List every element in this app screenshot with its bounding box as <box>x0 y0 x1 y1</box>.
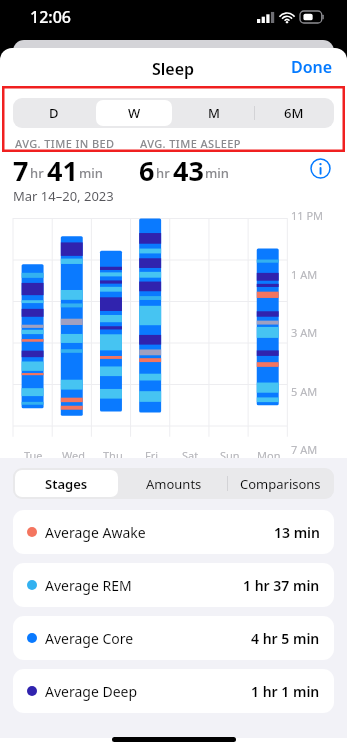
staticText: Amounts <box>146 475 202 493</box>
button[interactable]: D <box>13 98 94 128</box>
staticText: Sun <box>220 448 240 463</box>
staticText: Done <box>291 56 333 78</box>
staticText: 9 AM <box>291 501 318 516</box>
button[interactable]: Stages <box>13 468 120 499</box>
staticText: M <box>208 104 220 122</box>
staticText: 7 <box>13 152 29 184</box>
staticText: W <box>128 104 141 122</box>
staticText: Average Awake <box>45 523 146 542</box>
staticText: D <box>49 104 59 122</box>
button[interactable]: Amounts <box>120 468 227 499</box>
staticText: Fri <box>145 448 159 463</box>
button[interactable]: Comparisons <box>227 468 334 499</box>
staticText: 3 AM <box>291 325 318 340</box>
staticText: Thu <box>103 448 123 463</box>
staticText: hr <box>156 164 170 182</box>
staticText: 6M <box>284 104 304 122</box>
staticText: 11 PM <box>291 208 324 223</box>
staticText: Sleep <box>152 58 195 80</box>
staticText: Average REM <box>45 576 132 595</box>
button[interactable]: Average Core <box>13 616 334 660</box>
staticText: min <box>205 164 229 182</box>
button[interactable]: Done <box>277 50 347 84</box>
button[interactable]: Average Awake <box>13 510 334 554</box>
staticText: 13 min <box>274 523 320 542</box>
staticText: AVG. TIME IN BED <box>15 136 115 151</box>
staticText: Average Core <box>45 629 134 648</box>
staticText: 1 AM <box>291 267 318 282</box>
staticText: 41 <box>47 152 78 184</box>
staticText: 43 <box>173 152 204 184</box>
staticText: 12:06 <box>30 6 71 28</box>
staticText: 4 hr 5 min <box>251 629 320 648</box>
staticText: Sat <box>182 448 199 463</box>
staticText: AVG. TIME ASLEEP <box>140 136 241 151</box>
button[interactable]: 6M <box>254 98 334 128</box>
staticText: 1 hr 37 min <box>243 576 320 595</box>
button[interactable]: Average REM <box>13 563 334 607</box>
staticText: min <box>79 164 103 182</box>
staticText: Average Deep <box>45 682 138 701</box>
staticText: 7 AM <box>291 442 318 457</box>
staticText: 6 <box>139 152 155 184</box>
button[interactable]: W <box>94 98 174 128</box>
button[interactable]: Information about sleep data <box>303 152 337 184</box>
staticText: hr <box>30 164 44 182</box>
staticText: Stages <box>45 475 88 493</box>
staticText: 5 AM <box>291 384 318 399</box>
staticText: Mar 14–20, 2023 <box>13 187 114 205</box>
staticText: Mon <box>257 448 281 463</box>
staticText: 1 hr 1 min <box>251 682 320 701</box>
button[interactable]: M <box>174 98 254 128</box>
staticText: Wed <box>62 448 85 463</box>
button[interactable]: Average Deep <box>13 669 334 713</box>
staticText: Comparisons <box>240 475 321 493</box>
staticText: Tue <box>24 448 43 463</box>
